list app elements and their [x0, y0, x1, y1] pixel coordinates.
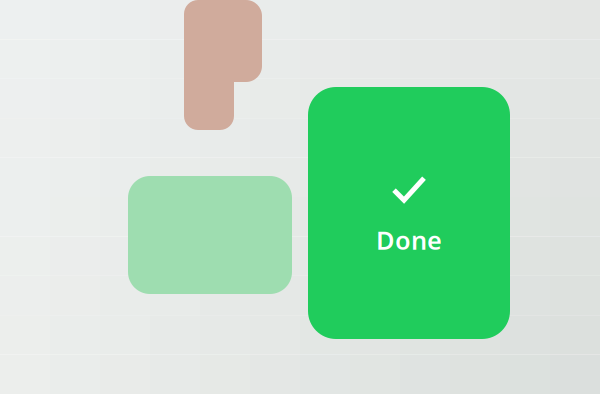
staticText: Done	[376, 223, 442, 257]
button[interactable]: Done	[308, 87, 510, 339]
button[interactable]	[128, 176, 292, 294]
